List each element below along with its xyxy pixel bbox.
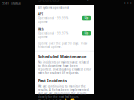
button[interactable]: Helpful <box>63 99 68 100</box>
staticText: We are continuing to monitor the results… <box>38 85 89 99</box>
staticText: No incidents or maintenance related to t… <box>38 61 91 75</box>
staticText: API <box>38 12 43 16</box>
button[interactable]: Up <box>82 16 91 20</box>
staticText: Operational · 99.97% uptime <box>38 32 68 39</box>
staticText: 9:41 status <box>2 0 21 6</box>
staticText: Web <box>38 28 44 31</box>
staticText: • • • <box>124 0 132 6</box>
staticText: Up <box>84 16 88 20</box>
staticText: Past Incidents <box>38 78 67 83</box>
staticText: Status <box>38 0 59 3</box>
staticText: Was this helpful? <box>38 99 61 100</box>
button[interactable]: Up <box>82 31 91 35</box>
staticText: 👎 <box>70 99 75 100</box>
button[interactable]: Not helpful <box>70 99 75 100</box>
staticText: 👍 <box>63 99 68 100</box>
staticText: All systems operational <box>38 6 69 9</box>
staticText: Up <box>84 31 88 35</box>
staticText: Uptime over the past 90 days. View histo… <box>38 42 87 49</box>
staticText: ↗ <box>86 0 90 2</box>
staticText: Scheduled Maintenance <box>38 54 86 59</box>
staticText: Operational · 99.99% uptime <box>38 17 68 24</box>
button[interactable]: Share <box>86 0 91 1</box>
